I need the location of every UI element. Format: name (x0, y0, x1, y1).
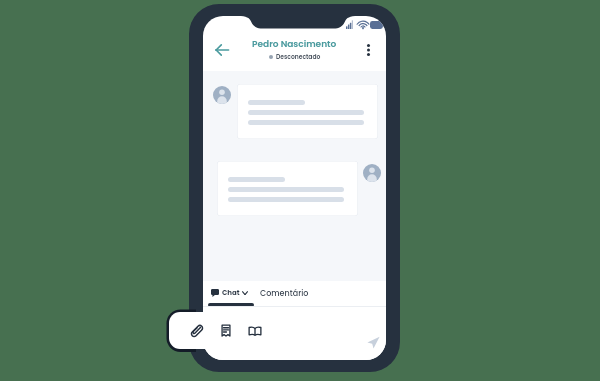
button[interactable]: Send (363, 332, 383, 352)
button[interactable]: Back (210, 38, 234, 62)
staticText: Desconectado (276, 53, 321, 61)
button[interactable]: Attach file (186, 320, 207, 341)
button[interactable]: Chat (208, 285, 251, 301)
button[interactable]: Invoice (215, 320, 236, 341)
button[interactable]: Knowledge base (244, 320, 265, 341)
button[interactable]: Attach file (169, 312, 282, 349)
staticText: Chat (222, 288, 240, 298)
staticText: Comentário (260, 288, 309, 299)
button[interactable]: More options (358, 40, 378, 60)
button[interactable]: Comentário (257, 285, 312, 302)
staticText: Pedro Nascimento (252, 38, 337, 51)
